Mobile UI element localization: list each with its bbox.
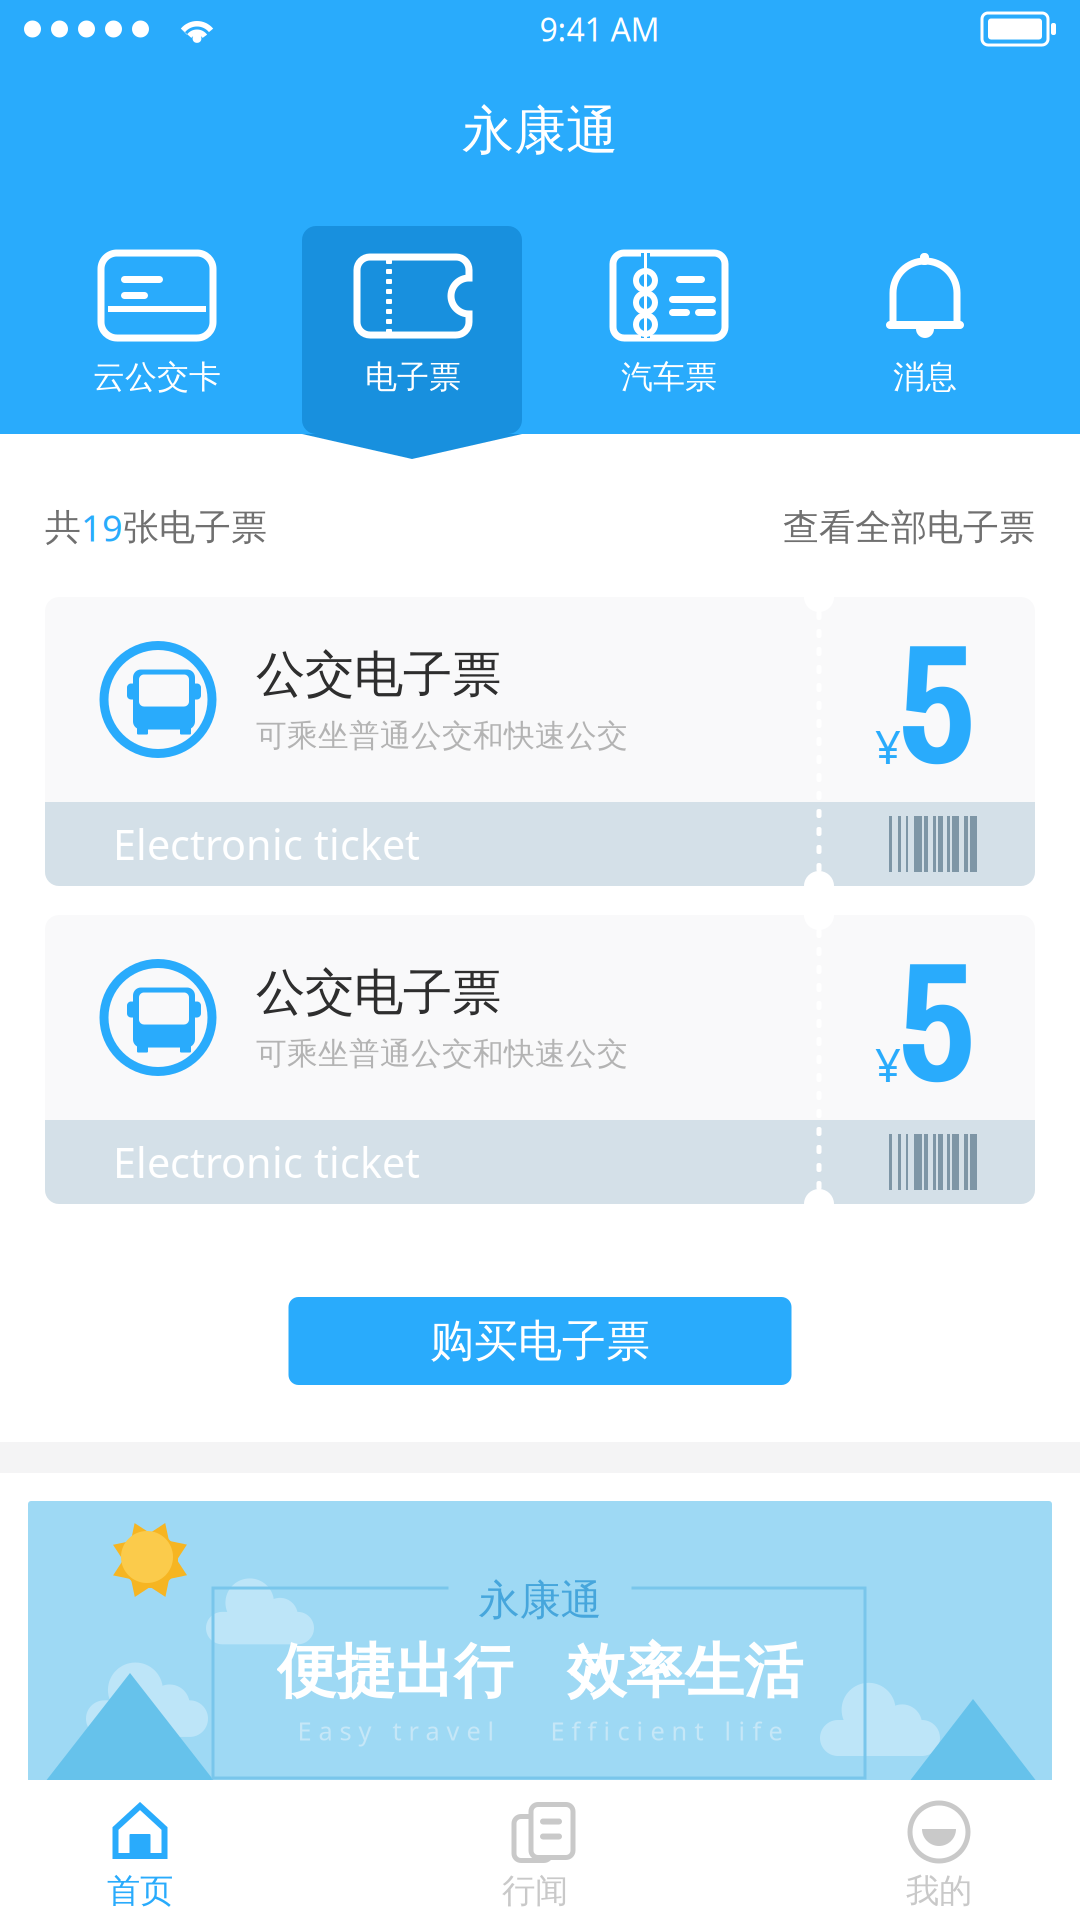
button[interactable]: 公交电子票 [45, 597, 1035, 886]
staticText: 我的 [906, 1870, 972, 1911]
staticText: E a s y t r a v e l E f f i c i e n t l … [297, 1714, 782, 1747]
staticText: 9:41 AM [539, 8, 659, 50]
staticText: 查看全部电子票 [783, 505, 1035, 550]
staticText: 便捷出行 效率生活 [277, 1636, 803, 1708]
button[interactable]: 电子票 [285, 226, 541, 434]
staticText: ¥ [875, 1034, 901, 1095]
button[interactable]: 首页 [10, 1780, 270, 1920]
staticText: 5 [898, 906, 975, 1133]
staticText: 汽车票 [621, 357, 717, 397]
staticText: 张电子票 [123, 505, 267, 550]
staticText: 云公交卡 [93, 357, 221, 397]
button[interactable]: 汽车票 [541, 226, 797, 434]
staticText: Electronic ticket [113, 817, 420, 871]
staticText: 电子票 [365, 357, 461, 397]
staticText: 公交电子票 [256, 644, 501, 705]
staticText: 行闻 [502, 1870, 568, 1911]
button[interactable]: 云公交卡 [29, 226, 285, 434]
button[interactable]: 消息 [797, 226, 1053, 434]
button[interactable]: 购买电子票 [288, 1297, 791, 1385]
staticText: 可乘坐普通公交和快速公交 [256, 717, 628, 755]
staticText: ¥ [875, 716, 901, 777]
staticText: Electronic ticket [113, 1135, 420, 1189]
button[interactable]: 公交电子票 [45, 915, 1035, 1204]
staticText: 共 [45, 505, 81, 550]
staticText: 可乘坐普通公交和快速公交 [256, 1035, 628, 1073]
button[interactable]: 我的 [809, 1780, 1069, 1920]
staticText: 永康通 [478, 1575, 601, 1626]
staticText: 购买电子票 [430, 1314, 650, 1368]
button[interactable]: 查看全部电子票 [783, 505, 1035, 550]
staticText: 永康通 [462, 99, 618, 163]
staticText: 消息 [893, 357, 957, 397]
staticText: 5 [898, 588, 975, 815]
staticText: 19 [81, 504, 123, 551]
button[interactable]: 行闻 [405, 1780, 665, 1920]
staticText: 公交电子票 [256, 962, 501, 1023]
staticText: 首页 [107, 1870, 173, 1911]
